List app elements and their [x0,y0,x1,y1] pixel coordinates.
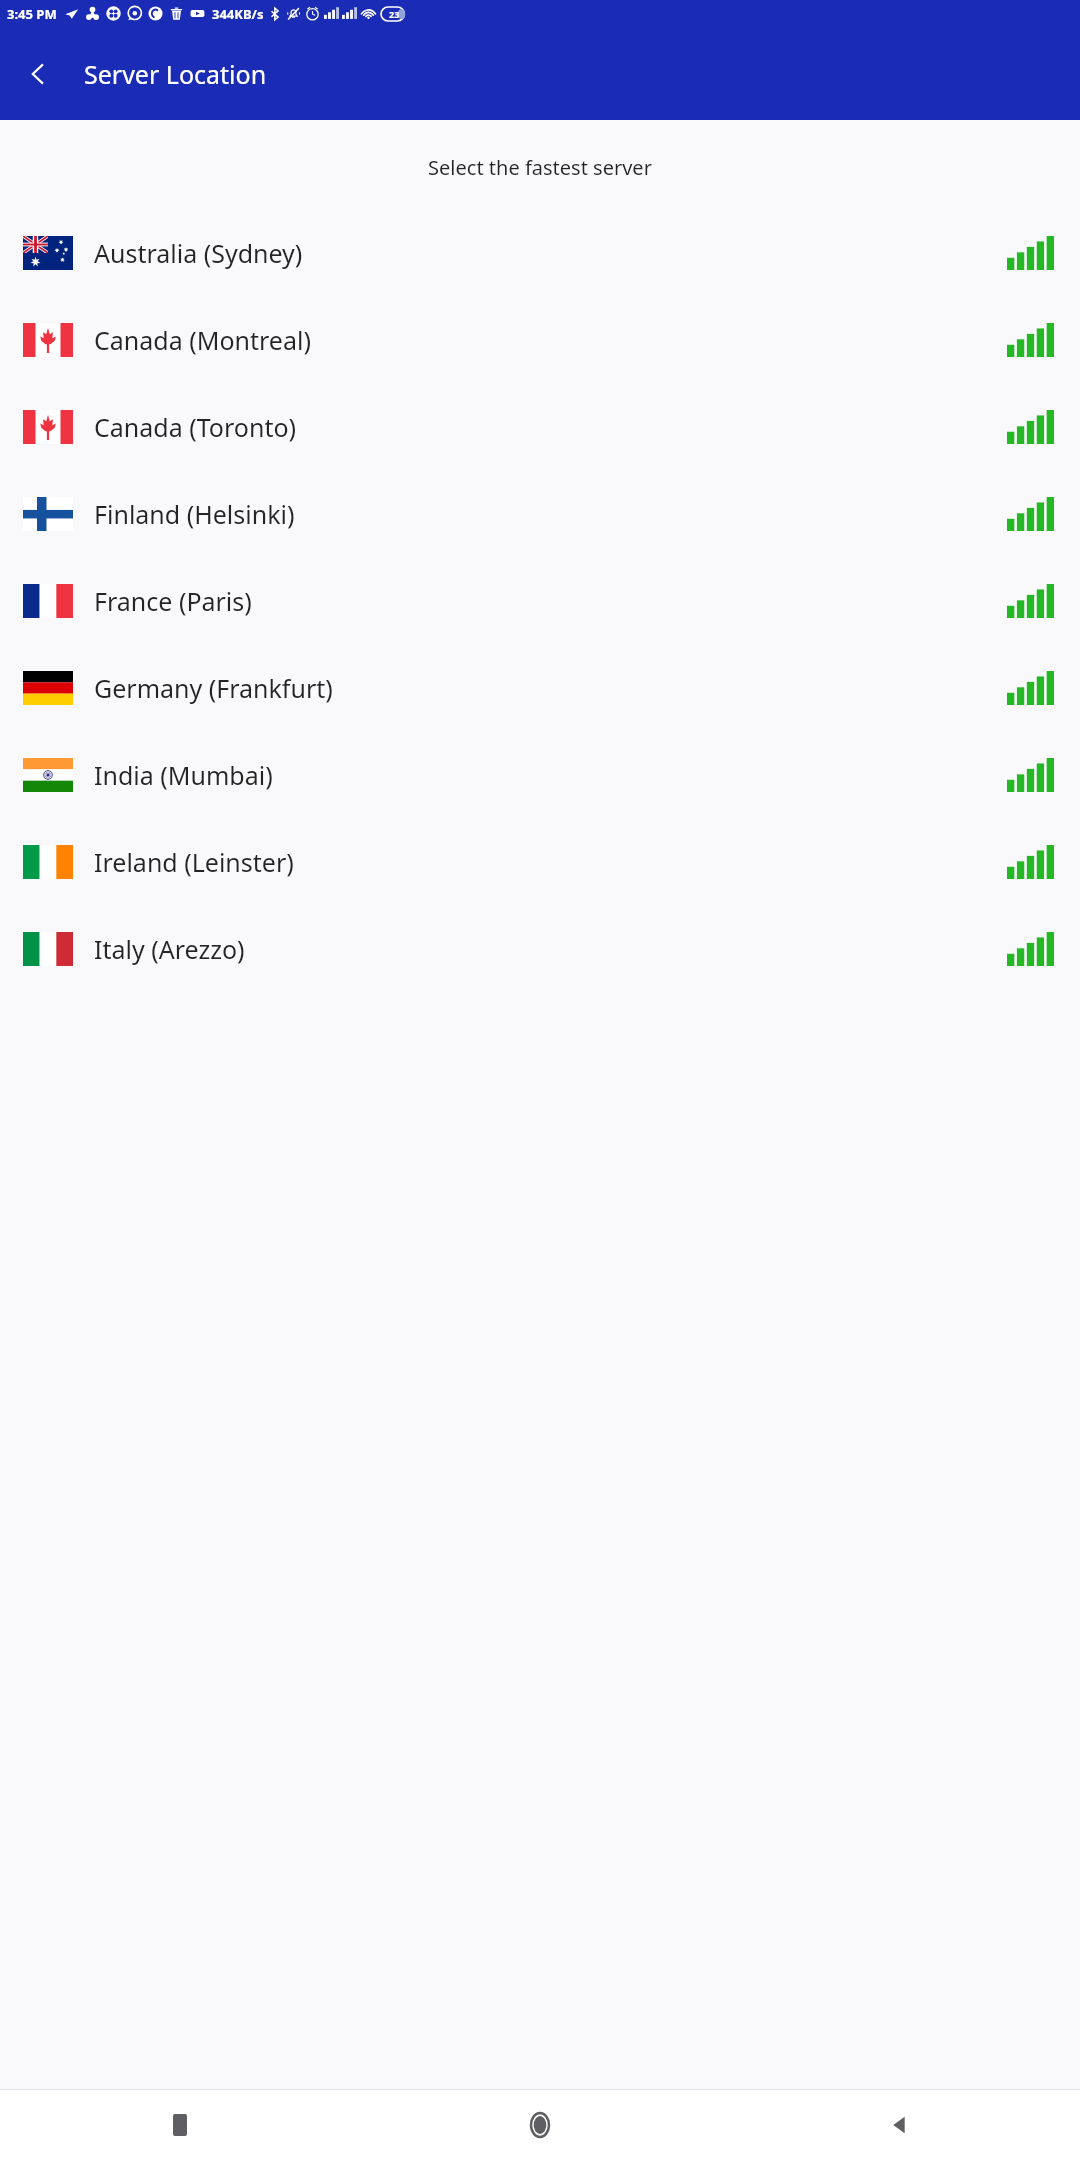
staticText: Server Location [84,57,267,91]
staticText: Italy (Arezzo) [94,932,245,966]
staticText: Canada (Montreal) [94,323,311,357]
staticText: Finland (Helsinki) [94,497,295,531]
button[interactable]: Italy (Arezzo) [0,905,1080,992]
staticText: 23 [389,8,400,20]
button[interactable]: Canada (Toronto) [0,383,1080,470]
staticText: 3:45 PM [7,5,57,23]
button[interactable]: Home [360,2090,720,2160]
button[interactable]: Back [14,50,62,98]
staticText: Canada (Toronto) [94,410,297,444]
staticText: Germany (Frankfurt) [94,671,333,705]
staticText: 344KB/s [212,5,264,23]
button[interactable]: Finland (Helsinki) [0,470,1080,557]
button[interactable]: Canada (Montreal) [0,296,1080,383]
button[interactable]: Ireland (Leinster) [0,818,1080,905]
staticText: Ireland (Leinster) [94,845,294,879]
button[interactable]: Back [720,2090,1080,2160]
staticText: Australia (Sydney) [94,236,303,270]
staticText: India (Mumbai) [94,758,273,792]
button[interactable]: France (Paris) [0,557,1080,644]
staticText: Select the fastest server [0,154,1080,181]
button[interactable]: India (Mumbai) [0,731,1080,818]
button[interactable]: Germany (Frankfurt) [0,644,1080,731]
button[interactable]: Recent apps [0,2090,360,2160]
button[interactable]: Australia (Sydney) [0,209,1080,296]
staticText: France (Paris) [94,584,252,618]
